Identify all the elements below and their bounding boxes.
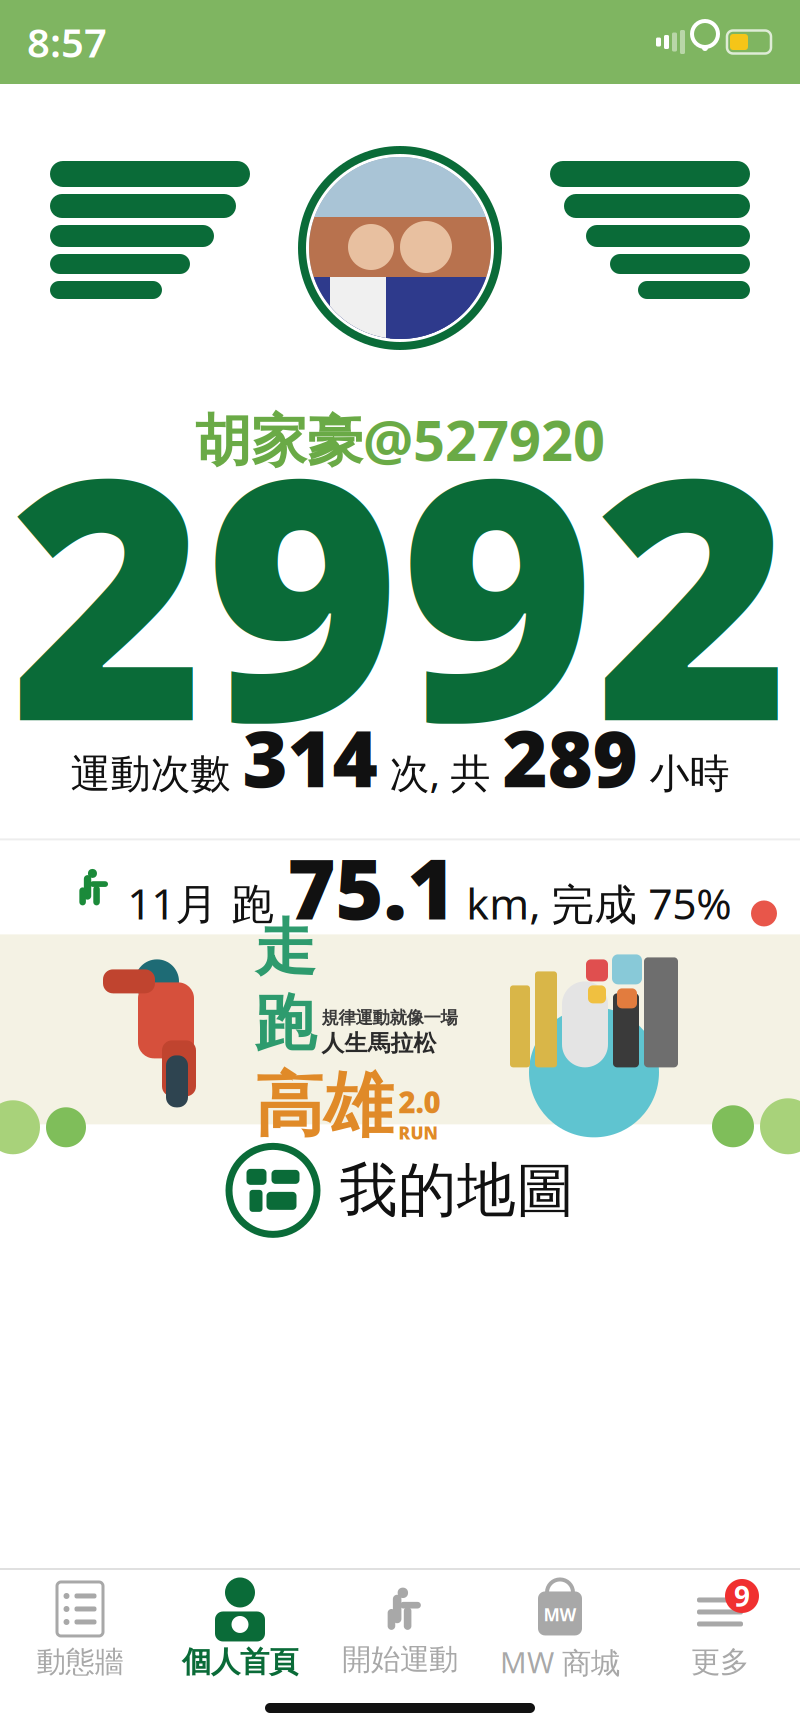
staticText: 289 bbox=[502, 706, 637, 809]
staticText: RUN bbox=[398, 1121, 437, 1144]
button[interactable]: 動態牆 bbox=[0, 1578, 160, 1682]
staticText: MW 商城 bbox=[500, 1642, 620, 1681]
staticText: 規律運動就像一場 bbox=[321, 1007, 457, 1028]
button[interactable]: MW bbox=[480, 1578, 640, 1682]
staticText: 75.1 bbox=[287, 832, 455, 942]
staticText: MW bbox=[543, 1603, 576, 1626]
button[interactable]: 個人首頁 bbox=[160, 1578, 320, 1682]
staticText: 我的地圖 bbox=[339, 1154, 575, 1226]
staticText: 走跑 bbox=[254, 910, 315, 1061]
staticText: 胡家豪@527920 bbox=[195, 402, 605, 476]
button[interactable]: 9 bbox=[640, 1578, 800, 1682]
staticText: 高雄 bbox=[254, 1063, 392, 1148]
staticText: 9 bbox=[734, 1577, 750, 1615]
staticText: 11月 跑 bbox=[127, 875, 287, 931]
button[interactable]: 11月 跑 bbox=[0, 840, 800, 934]
staticText: 小時 bbox=[637, 749, 729, 799]
staticText: km, 完成 75% bbox=[455, 875, 731, 931]
staticText: 更多 bbox=[691, 1644, 749, 1680]
button[interactable]: 胡家豪@527920 bbox=[195, 394, 605, 476]
staticText: 人生馬拉松 bbox=[321, 1029, 436, 1057]
staticText: 2.0 bbox=[398, 1082, 440, 1121]
staticText: 2992 bbox=[10, 370, 790, 813]
staticText: 動態牆 bbox=[36, 1644, 123, 1680]
staticText: 運動次數 bbox=[70, 749, 242, 799]
staticText: 8:57 bbox=[27, 15, 107, 68]
button[interactable]: 我的地圖 bbox=[0, 1124, 800, 1256]
staticText: 314 bbox=[242, 706, 377, 809]
staticText: 開始運動 bbox=[342, 1642, 458, 1678]
button[interactable]: 走跑高雄 2.0 活動橫幅 bbox=[0, 934, 800, 1124]
staticText: 個人首頁 bbox=[182, 1644, 298, 1680]
staticText: 次, 共 bbox=[377, 746, 502, 799]
button[interactable]: 開始運動 bbox=[320, 1578, 480, 1682]
